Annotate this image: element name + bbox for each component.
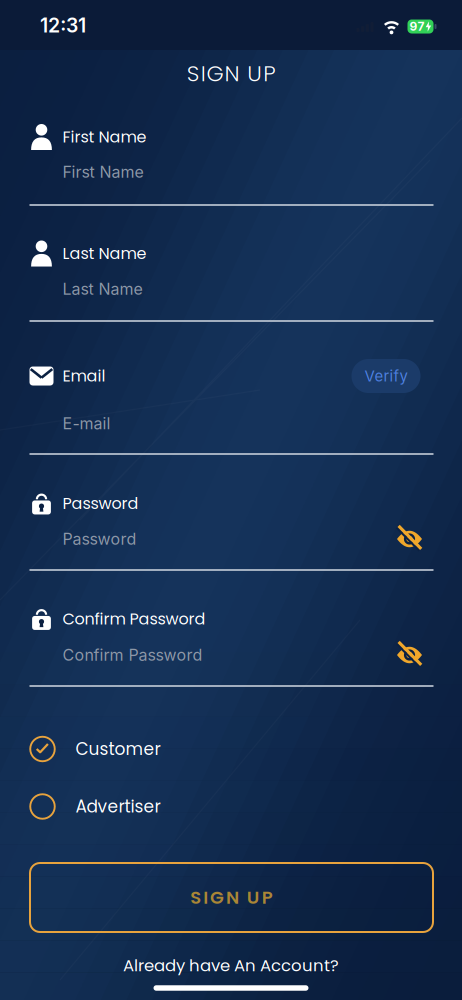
- staticText: Last Name: [62, 242, 146, 265]
- staticText: U: [247, 58, 262, 89]
- staticText: P: [262, 885, 273, 910]
- staticText: Email: [62, 365, 105, 387]
- button[interactable]: Already have An Account?: [123, 954, 339, 977]
- staticText: Confirm Password: [62, 645, 202, 665]
- staticText: E-mail: [62, 414, 110, 433]
- staticText: I: [203, 885, 208, 910]
- staticText: G: [210, 885, 224, 910]
- staticText: Password: [62, 529, 136, 549]
- button[interactable]: Customer: [29, 736, 433, 762]
- staticText: Last Name: [62, 279, 142, 299]
- staticText: Customer: [75, 737, 160, 761]
- button[interactable]: Verify: [351, 359, 420, 393]
- staticText: P: [263, 58, 275, 89]
- staticText: Already have An Account?: [123, 954, 339, 977]
- staticText: N: [226, 885, 239, 910]
- staticText: N: [224, 58, 239, 89]
- staticText: Password: [62, 492, 138, 515]
- button[interactable]: [395, 524, 424, 553]
- staticText: First Name: [62, 126, 146, 148]
- staticText: I: [201, 58, 206, 89]
- button[interactable]: Advertiser: [29, 793, 433, 819]
- staticText: 97: [409, 19, 424, 34]
- staticText: Advertiser: [75, 795, 160, 818]
- staticText: First Name: [62, 162, 143, 182]
- button[interactable]: S: [30, 863, 433, 932]
- staticText: G: [207, 58, 224, 89]
- staticText: S: [187, 58, 200, 89]
- staticText: Verify: [364, 367, 407, 385]
- staticText: 12:31: [40, 14, 86, 37]
- staticText: S: [190, 885, 201, 910]
- staticText: U: [247, 885, 260, 910]
- button[interactable]: [395, 640, 424, 669]
- staticText: Confirm Password: [62, 608, 205, 630]
